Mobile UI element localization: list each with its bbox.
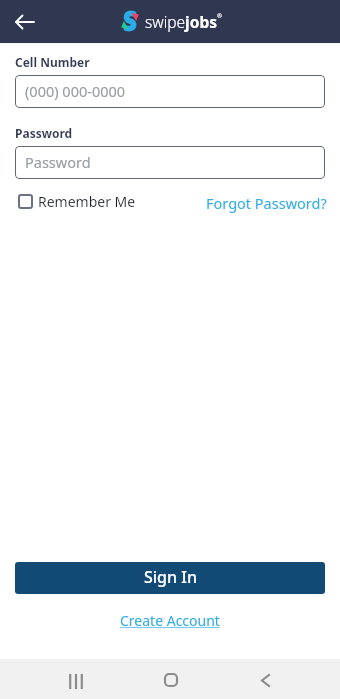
staticText: Password <box>25 152 91 172</box>
staticText: ® <box>217 12 222 20</box>
staticText: Remember Me <box>38 192 136 211</box>
button[interactable]: Forgot Password? <box>206 193 327 213</box>
button[interactable]: Sign In <box>15 562 325 594</box>
button[interactable]: Password <box>15 146 325 179</box>
staticText: Password <box>15 125 73 141</box>
staticText: Cell Number <box>15 54 90 70</box>
button[interactable]: Remember Me <box>18 192 136 211</box>
staticText: (000) 000-0000 <box>25 81 126 101</box>
staticText: Sign In <box>144 566 197 588</box>
button[interactable]: Recent apps <box>55 661 96 699</box>
staticText: swipejobs <box>145 11 217 32</box>
button[interactable]: Home <box>150 660 191 699</box>
button[interactable]: Back <box>10 7 40 37</box>
button[interactable]: Back <box>245 660 286 699</box>
button[interactable]: (000) 000-0000 <box>15 75 325 108</box>
button[interactable]: Create Account <box>120 611 220 630</box>
